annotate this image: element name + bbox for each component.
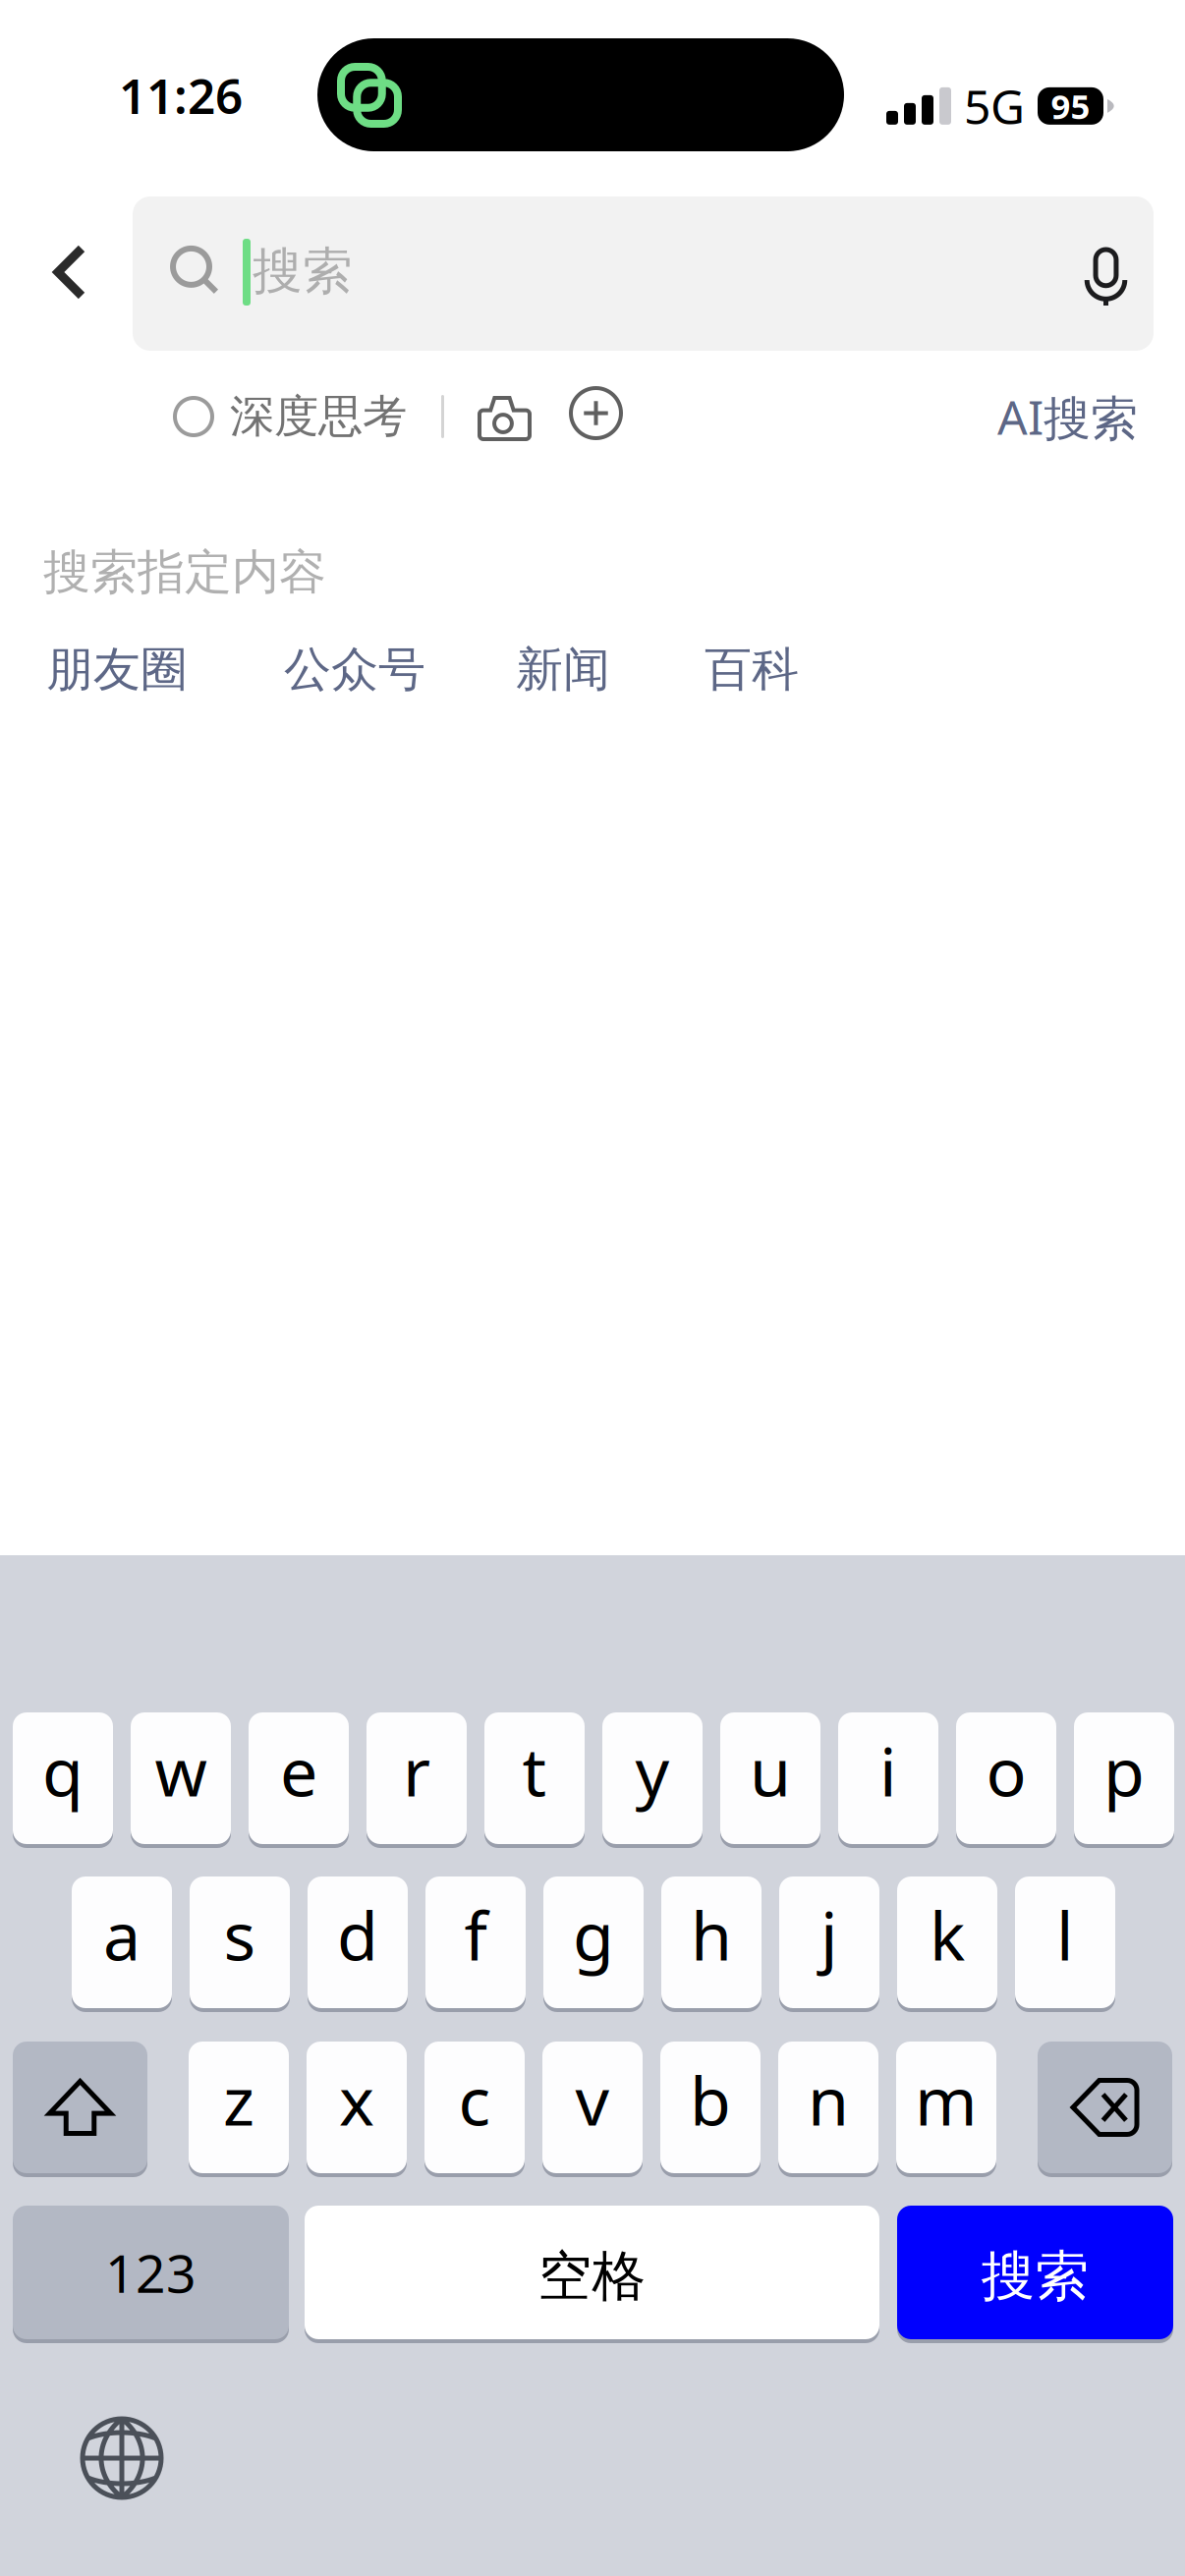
button[interactable]: 123 <box>13 2206 289 2339</box>
staticText: 新闻 <box>516 641 610 699</box>
staticText: a <box>103 1890 141 1979</box>
button[interactable]: d <box>308 1876 408 2008</box>
staticText: c <box>458 2055 491 2144</box>
staticText: v <box>575 2055 610 2144</box>
button[interactable]: y <box>602 1712 703 1844</box>
staticText: x <box>339 2055 374 2144</box>
button[interactable]: Switch keyboard <box>65 2401 179 2515</box>
staticText: p <box>1103 1726 1145 1815</box>
button[interactable]: 深度思考 <box>167 373 415 460</box>
staticText: 朋友圈 <box>46 641 188 699</box>
button[interactable]: 新闻 <box>516 641 610 699</box>
button[interactable]: More <box>553 370 639 456</box>
button[interactable]: g <box>543 1876 644 2008</box>
button[interactable]: Delete <box>1038 2042 1172 2173</box>
button[interactable]: c <box>424 2042 525 2173</box>
button[interactable]: l <box>1015 1876 1115 2008</box>
button[interactable]: i <box>838 1712 938 1844</box>
staticText: w <box>155 1726 207 1815</box>
staticText: 搜索指定内容 <box>43 543 326 601</box>
staticText: AI搜索 <box>997 385 1138 448</box>
button[interactable]: h <box>661 1876 762 2008</box>
button[interactable]: 搜索 <box>897 2206 1173 2339</box>
button[interactable]: e <box>249 1712 349 1844</box>
staticText: k <box>930 1890 965 1979</box>
staticText: 5G <box>964 75 1025 137</box>
button[interactable]: t <box>484 1712 585 1844</box>
button[interactable]: p <box>1074 1712 1174 1844</box>
staticText: 95 <box>1051 83 1090 129</box>
button[interactable]: k <box>897 1876 997 2008</box>
button[interactable]: 空格 <box>305 2206 879 2339</box>
button[interactable]: q <box>13 1712 113 1844</box>
staticText: h <box>691 1890 732 1979</box>
staticText: f <box>464 1890 487 1979</box>
staticText: 123 <box>105 2238 197 2307</box>
button[interactable]: Shift <box>13 2042 147 2173</box>
button[interactable]: x <box>307 2042 407 2173</box>
staticText: l <box>1056 1890 1074 1979</box>
button[interactable]: a <box>72 1876 172 2008</box>
staticText: y <box>635 1726 670 1815</box>
staticText: b <box>690 2055 731 2144</box>
button[interactable]: s <box>190 1876 290 2008</box>
staticText: 百科 <box>705 641 799 699</box>
button[interactable]: r <box>367 1712 467 1844</box>
staticText: m <box>915 2055 978 2144</box>
button[interactable]: 百科 <box>705 641 799 699</box>
staticText: e <box>280 1726 317 1815</box>
staticText: d <box>337 1890 378 1979</box>
staticText: 公众号 <box>284 641 425 699</box>
button[interactable]: w <box>131 1712 231 1844</box>
button[interactable]: Back <box>28 211 112 333</box>
button[interactable]: m <box>896 2042 996 2173</box>
button[interactable]: Voice search <box>1056 216 1156 339</box>
button[interactable]: o <box>956 1712 1056 1844</box>
staticText: r <box>403 1726 430 1815</box>
staticText: u <box>750 1726 791 1815</box>
button[interactable]: AI搜索 <box>987 373 1148 460</box>
staticText: g <box>573 1890 614 1979</box>
staticText: 11:26 <box>119 63 243 127</box>
staticText: n <box>808 2055 849 2144</box>
staticText: j <box>820 1890 838 1979</box>
staticText: t <box>522 1726 547 1815</box>
staticText: q <box>42 1726 84 1815</box>
staticText: 深度思考 <box>230 389 407 444</box>
button[interactable]: 朋友圈 <box>46 641 188 699</box>
staticText: 搜索 <box>981 2243 1089 2309</box>
staticText: z <box>223 2055 254 2144</box>
staticText: 空格 <box>538 2243 646 2309</box>
staticText: s <box>224 1890 256 1979</box>
button[interactable]: n <box>778 2042 878 2173</box>
staticText: o <box>986 1726 1026 1815</box>
button[interactable]: v <box>542 2042 643 2173</box>
button[interactable]: z <box>189 2042 289 2173</box>
button[interactable]: b <box>660 2042 761 2173</box>
button[interactable]: Search by image <box>462 375 547 462</box>
button[interactable]: u <box>720 1712 820 1844</box>
staticText: i <box>879 1726 897 1815</box>
button[interactable]: f <box>425 1876 526 2008</box>
staticText: 搜索 <box>253 241 353 302</box>
button[interactable]: 公众号 <box>284 641 425 699</box>
button[interactable]: j <box>779 1876 879 2008</box>
